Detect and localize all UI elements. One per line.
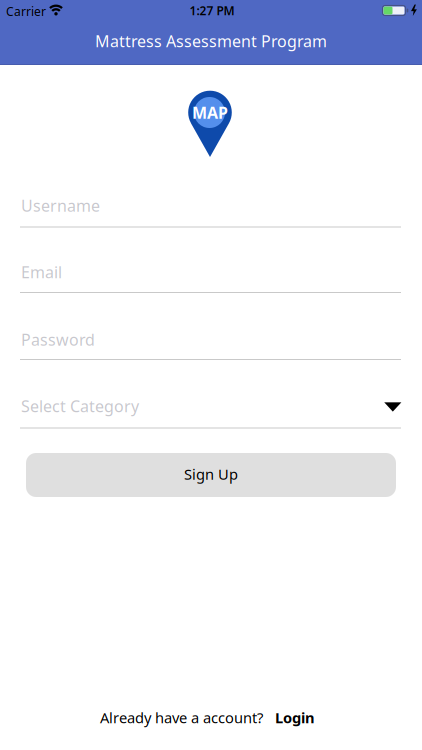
staticText: 1:27 PM (189, 2, 234, 18)
button[interactable]: Select Category (20, 390, 422, 430)
staticText: Already have a account? (100, 708, 263, 727)
staticText: Email (21, 261, 62, 283)
staticText: Username (21, 195, 100, 216)
button[interactable]: Username (20, 187, 422, 228)
button[interactable]: Password (20, 321, 422, 362)
button[interactable]: Sign Up (26, 453, 396, 497)
button[interactable]: Email (20, 253, 422, 294)
staticText: Select Category (21, 395, 139, 417)
staticText: Sign Up (184, 464, 238, 484)
staticText: Login (275, 708, 315, 727)
button[interactable]: Login (275, 708, 315, 727)
staticText: Carrier (6, 3, 46, 19)
staticText: Mattress Assessment Program (95, 30, 327, 52)
staticText: MAP (192, 102, 228, 123)
staticText: Password (21, 329, 95, 350)
